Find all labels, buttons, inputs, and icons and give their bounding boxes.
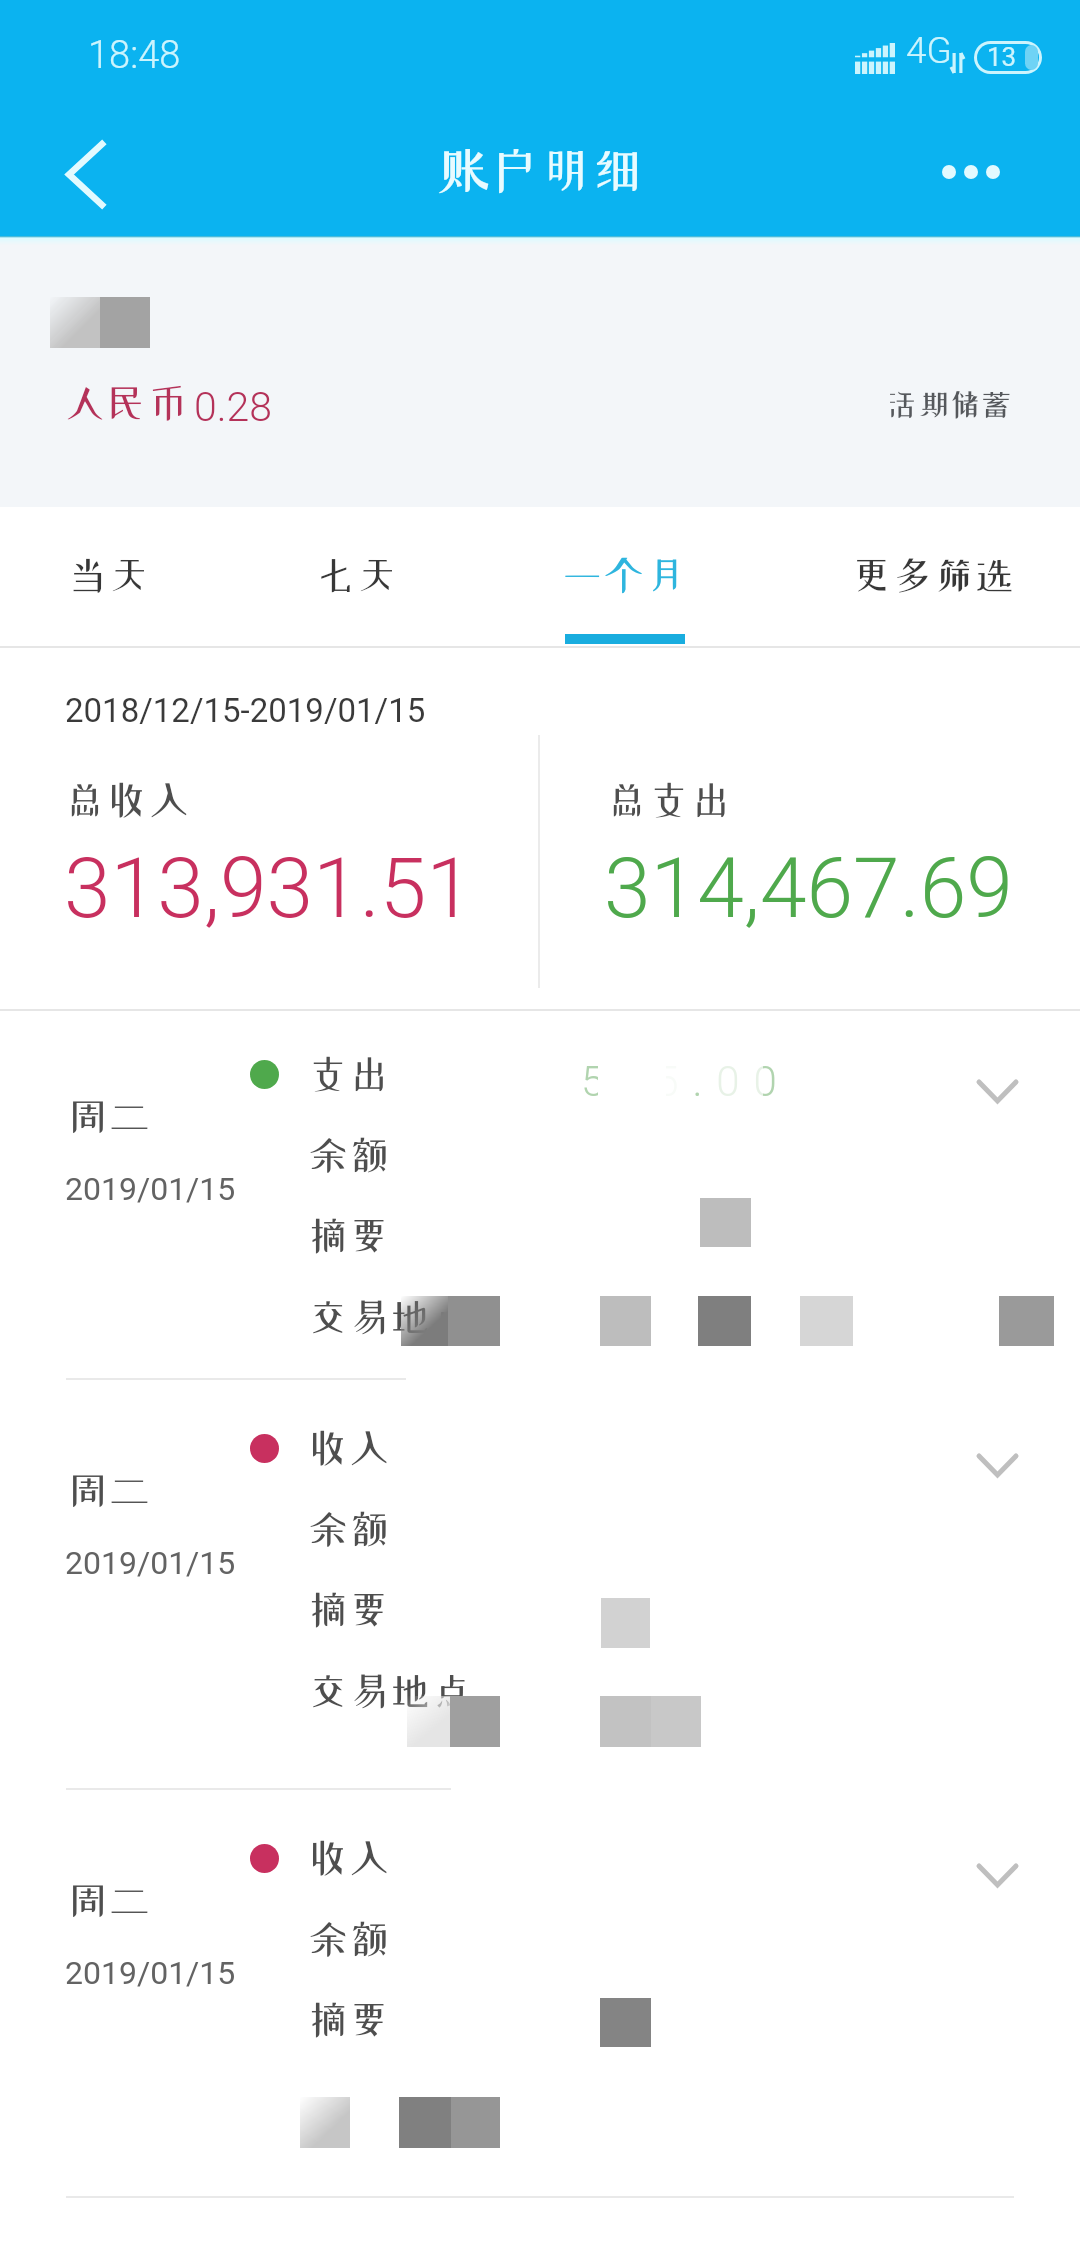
staticText: 13 — [987, 42, 1017, 72]
staticText: 周二 — [67, 1470, 150, 1511]
button[interactable]: 七天 — [306, 525, 406, 625]
staticText: 摘要 — [307, 1589, 390, 1630]
button[interactable]: 当天 — [58, 525, 158, 625]
staticText: 周二 — [67, 1880, 150, 1921]
staticText: 314,467.69 — [604, 839, 1013, 937]
staticText: 2019/01/15 — [65, 1170, 236, 1208]
staticText: 555.00 — [581, 1057, 791, 1106]
button[interactable]: 555.00 — [0, 1011, 1080, 1380]
staticText: 18:48 — [88, 33, 181, 78]
staticText: 余额 — [307, 1918, 390, 1959]
button[interactable]: Expand transaction — [948, 1038, 1048, 1118]
staticText: 2019/01/15 — [65, 1954, 236, 1992]
button[interactable]: Back — [0, 100, 150, 236]
staticText: 收入 — [307, 1837, 390, 1878]
button[interactable]: 一个月 — [553, 525, 693, 625]
button[interactable]: More options — [930, 100, 1080, 236]
staticText: 总收入 — [64, 779, 190, 820]
staticText: 周二 — [67, 1096, 150, 1137]
staticText: 交易地点 — [307, 1296, 472, 1337]
button[interactable]: 周二 — [0, 1380, 1080, 1790]
staticText: 活期储蓄 — [886, 389, 1012, 420]
staticText: 当天 — [67, 555, 149, 595]
button[interactable]: Expand transaction — [948, 1412, 1048, 1492]
staticText: 人民币 — [64, 382, 188, 423]
staticText: 收入 — [307, 1427, 390, 1468]
staticText: 摘要 — [307, 1215, 390, 1256]
staticText: 4G — [906, 29, 952, 72]
staticText: 总支出 — [606, 779, 732, 820]
staticText: 余额 — [307, 1508, 390, 1549]
staticText: 2018/12/15-2019/01/15 — [65, 691, 426, 730]
staticText: 2019/01/15 — [65, 1544, 236, 1582]
button[interactable]: 周二 — [0, 1790, 1080, 2198]
staticText: 一个月 — [562, 555, 685, 595]
staticText: 313,931.51 — [64, 839, 473, 937]
staticText: 0.28 — [194, 383, 273, 431]
button[interactable]: Expand transaction — [948, 1822, 1048, 1902]
button[interactable]: 更多筛选 — [843, 525, 1023, 625]
staticText: 更多筛选 — [851, 555, 1015, 595]
staticText: 账户明细 — [438, 145, 643, 195]
staticText: 支出 — [307, 1053, 390, 1094]
staticText: 余额 — [307, 1134, 390, 1175]
staticText: 摘要 — [307, 1999, 390, 2040]
staticText: 七天 — [315, 555, 397, 595]
staticText: 交易地点 — [307, 1670, 472, 1711]
